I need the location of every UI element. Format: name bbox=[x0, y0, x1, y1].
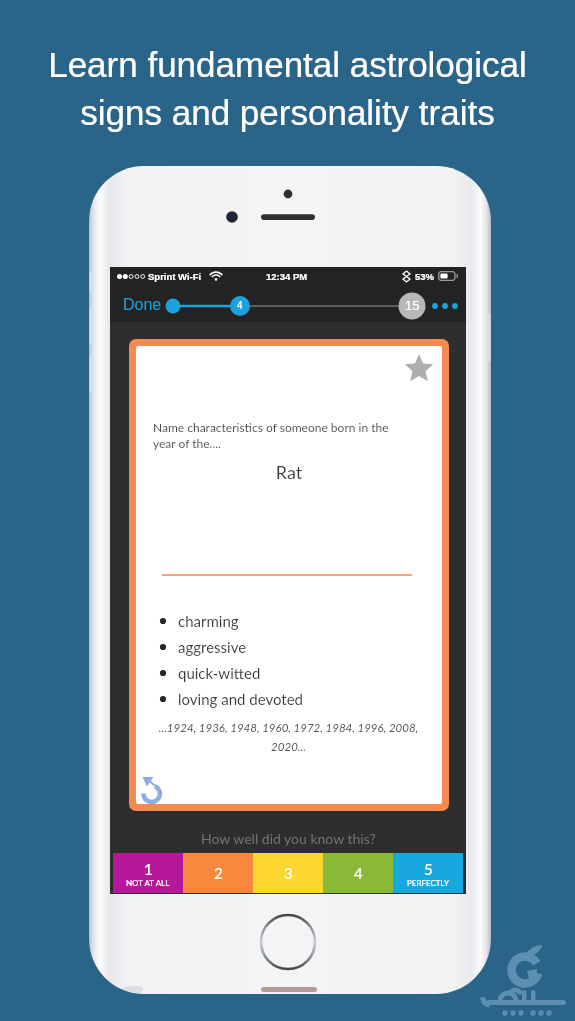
staticText: ...1924, 1936, 1948, 1960, 1972, 1984, 1… bbox=[145, 721, 432, 753]
staticText: Name characteristics of someone born in … bbox=[153, 420, 409, 451]
staticText: 12:34 PM bbox=[266, 271, 308, 282]
staticText: PERFECTLY bbox=[407, 878, 449, 888]
button[interactable]: Done bbox=[123, 285, 162, 322]
button[interactable]: Favorite bbox=[404, 354, 434, 384]
button[interactable]: Flip card bbox=[137, 772, 169, 804]
staticText: NOT AT ALL bbox=[126, 878, 170, 888]
staticText: quick-witted bbox=[178, 664, 261, 682]
staticText: 15 bbox=[405, 298, 420, 313]
staticText: loving and devoted bbox=[178, 690, 303, 708]
staticText: Sprint Wi-Fi bbox=[148, 271, 202, 282]
button[interactable]: 1 bbox=[113, 853, 183, 893]
staticText: How well did you know this? bbox=[201, 830, 376, 847]
staticText: charming bbox=[178, 612, 239, 630]
staticText: 4 bbox=[237, 300, 243, 311]
staticText: 1 bbox=[144, 860, 153, 878]
button[interactable]: 2 bbox=[183, 853, 253, 893]
staticText: 3 bbox=[284, 864, 293, 882]
staticText: Done bbox=[123, 296, 162, 314]
staticText: Rat bbox=[136, 461, 442, 483]
button[interactable]: 5 bbox=[393, 853, 463, 893]
button[interactable]: More options bbox=[426, 285, 460, 322]
button[interactable]: 3 bbox=[253, 853, 323, 893]
button[interactable]: 4 bbox=[323, 853, 393, 893]
staticText: signs and personality traits bbox=[80, 93, 495, 132]
staticText: 2 bbox=[214, 864, 223, 882]
button[interactable]: Favorite bbox=[136, 346, 442, 804]
button[interactable]: Home bbox=[259, 913, 317, 971]
staticText: 53% bbox=[415, 271, 435, 282]
staticText: Learn fundamental astrological bbox=[48, 45, 527, 84]
staticText: aggressive bbox=[178, 638, 247, 656]
staticText: 5 bbox=[424, 860, 433, 878]
staticText: 4 bbox=[354, 864, 363, 882]
